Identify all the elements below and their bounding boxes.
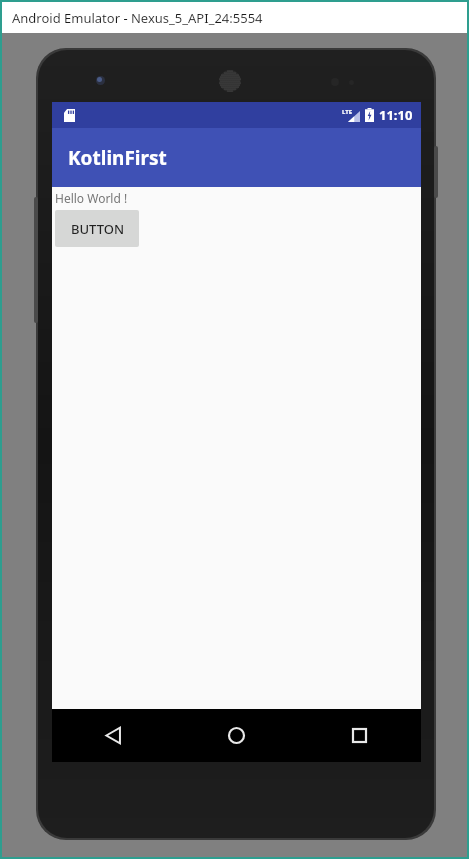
staticText: BUTTON <box>71 220 124 238</box>
button[interactable]: Back <box>52 709 175 762</box>
staticText: Android Emulator - Nexus_5_API_24:5554 <box>12 9 263 27</box>
staticText: 11:10 <box>379 106 413 124</box>
button[interactable]: Home <box>175 709 298 762</box>
staticText: Hello World ! <box>55 190 128 206</box>
button[interactable]: Recent apps <box>298 709 421 762</box>
staticText: KotlinFirst <box>68 145 167 171</box>
button[interactable]: BUTTON <box>55 210 139 247</box>
staticText: LTE <box>342 108 353 116</box>
